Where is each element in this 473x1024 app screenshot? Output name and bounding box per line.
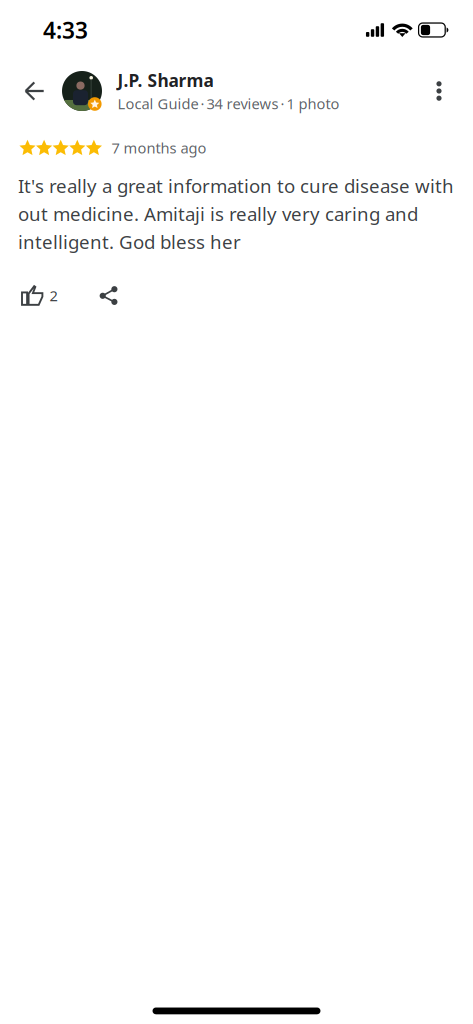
staticText: Local Guide · 34 reviews · 1 photo [117, 94, 339, 113]
staticText: 2 [49, 286, 57, 305]
button[interactable]: 2 [21, 281, 57, 310]
staticText: It's really a great information to cure … [18, 173, 454, 254]
staticText: 4:33 [43, 15, 88, 45]
staticText: 7 months ago [111, 138, 206, 157]
button[interactable]: More options [421, 68, 457, 114]
button[interactable]: Back [16, 68, 53, 114]
button[interactable]: J.P. Sharma [62, 68, 421, 114]
button[interactable]: Share [99, 282, 118, 309]
staticText: J.P. Sharma [117, 69, 213, 92]
